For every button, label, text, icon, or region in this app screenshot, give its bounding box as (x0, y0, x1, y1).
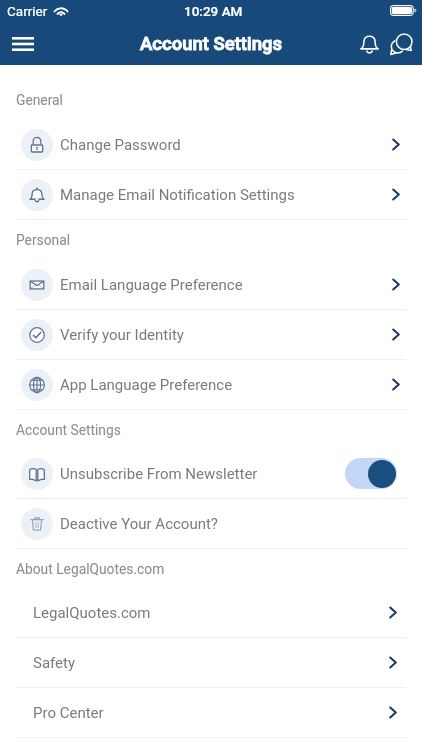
button[interactable]: Messages (387, 22, 415, 65)
staticText: Email Language Preference (60, 276, 243, 294)
staticText: Carrier (7, 3, 48, 19)
staticText: Pro Center (33, 704, 104, 722)
button[interactable]: Email Language Preference (0, 260, 422, 310)
staticText: About LegalQuotes.com (16, 561, 165, 577)
staticText: Safety (33, 654, 76, 672)
button[interactable]: Menu (1, 22, 44, 65)
button[interactable]: Notifications (351, 22, 387, 65)
button[interactable]: Change Password (0, 120, 422, 170)
staticText: General (16, 92, 63, 108)
button[interactable]: Unsubscribe From Newsletter (0, 449, 422, 499)
button[interactable]: Safety (0, 638, 422, 688)
button[interactable]: Deactive Your Account? (0, 499, 422, 549)
staticText: App Language Preference (60, 376, 233, 394)
staticText: Verify your Identity (60, 326, 184, 344)
button[interactable]: LegalQuotes.com (0, 588, 422, 638)
staticText: Change Password (60, 136, 181, 154)
staticText: LegalQuotes.com (33, 604, 151, 622)
button[interactable]: Pro Center (0, 688, 422, 738)
staticText: Account Settings (140, 33, 283, 55)
staticText: 10:29 AM (184, 3, 243, 19)
staticText: Unsubscribe From Newsletter (60, 465, 258, 483)
staticText: Deactive Your Account? (60, 515, 218, 533)
button[interactable]: Manage Email Notification Settings (0, 170, 422, 220)
staticText: Account Settings (16, 422, 121, 438)
button[interactable]: App Language Preference (0, 360, 422, 410)
staticText: Personal (16, 232, 71, 248)
staticText: Manage Email Notification Settings (60, 186, 295, 204)
button[interactable]: Verify your Identity (0, 310, 422, 360)
